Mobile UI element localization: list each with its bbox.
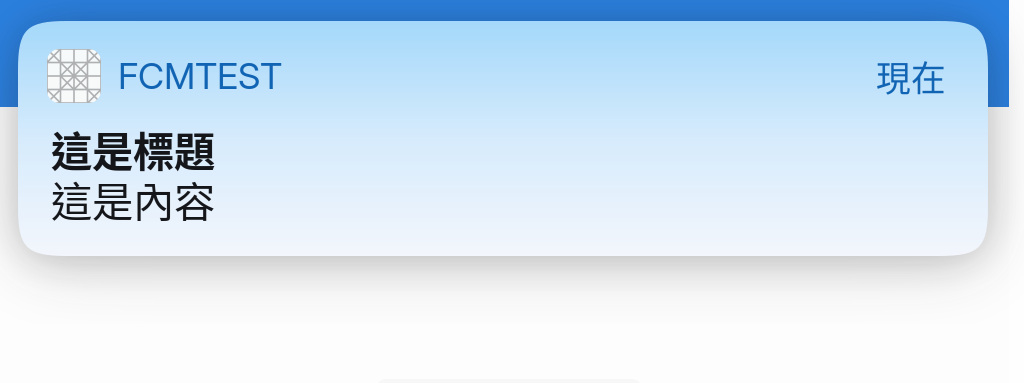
staticText: 這是內容 (51, 169, 215, 229)
staticText: 現在 (876, 51, 946, 101)
button[interactable]: FCMTEST (18, 21, 988, 256)
staticText: 這是標題 (51, 119, 215, 179)
staticText: FCMTEST (118, 54, 282, 98)
